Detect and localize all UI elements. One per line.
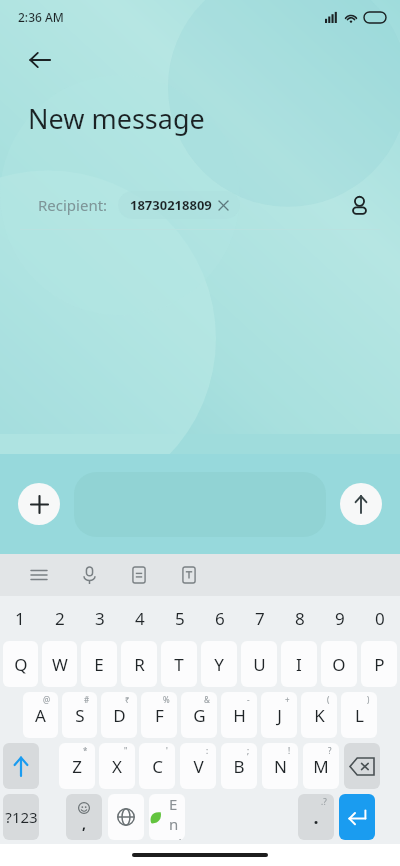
button[interactable]: T — [161, 641, 197, 687]
button[interactable]: 2 — [40, 598, 80, 638]
button[interactable]: X — [99, 743, 135, 789]
staticText: P — [374, 653, 385, 676]
staticText: " — [124, 745, 128, 756]
button[interactable]: E — [81, 641, 117, 687]
staticText: English — [169, 794, 185, 840]
staticText: # — [84, 694, 90, 705]
button[interactable] — [108, 794, 144, 840]
button[interactable]: S — [62, 692, 97, 738]
staticText: F — [155, 704, 164, 727]
staticText: A — [35, 704, 46, 727]
staticText: ( — [327, 694, 330, 705]
staticText: % — [163, 694, 170, 705]
staticText: V — [193, 755, 204, 778]
staticText: 4 — [135, 607, 145, 630]
button[interactable]: 3 — [80, 598, 120, 638]
staticText: ? — [328, 745, 332, 756]
staticText: N — [274, 755, 287, 778]
button[interactable]: H — [221, 692, 257, 738]
button[interactable]: B — [221, 743, 257, 789]
staticText: R — [134, 653, 145, 676]
button[interactable] — [339, 794, 375, 840]
staticText: S — [75, 704, 85, 727]
button[interactable]: A — [23, 692, 58, 738]
button[interactable]: 18730218809 — [118, 191, 240, 219]
staticText: . — [313, 805, 319, 830]
button[interactable]: N — [262, 743, 298, 789]
button[interactable]: 6 — [200, 598, 240, 638]
button[interactable]: L — [341, 692, 377, 738]
staticText: & — [204, 694, 210, 705]
button[interactable]: ?123 — [3, 794, 39, 840]
button[interactable]: 8 — [280, 598, 320, 638]
button[interactable]: V — [180, 743, 216, 789]
staticText: L — [355, 704, 364, 727]
button[interactable]: 9 — [320, 598, 360, 638]
button[interactable]: Voice input — [70, 556, 108, 594]
button[interactable]: J — [261, 692, 297, 738]
staticText: M — [313, 755, 329, 778]
button[interactable]: C — [139, 743, 175, 789]
button[interactable]: O — [321, 641, 357, 687]
staticText: : — [206, 745, 209, 756]
button[interactable]: K — [301, 692, 337, 738]
button[interactable]: Clipboard — [120, 556, 158, 594]
staticText: 5 — [175, 607, 185, 630]
button[interactable]: 7 — [240, 598, 280, 638]
button[interactable]: English — [149, 794, 185, 840]
staticText: J — [277, 704, 282, 727]
staticText: ! — [288, 745, 291, 756]
staticText: I — [296, 653, 302, 676]
staticText: C — [152, 755, 163, 778]
staticText: 6 — [215, 607, 225, 630]
button[interactable]: Send — [340, 483, 382, 525]
button[interactable]: D — [101, 692, 137, 738]
staticText: @ — [43, 694, 51, 705]
button[interactable]: I — [281, 641, 317, 687]
button[interactable]: Q — [3, 641, 38, 687]
staticText: X — [112, 755, 122, 778]
staticText: W — [52, 653, 68, 676]
staticText: T — [174, 653, 184, 676]
button[interactable]: 1 — [0, 598, 40, 638]
staticText: 2 — [55, 607, 65, 630]
button[interactable]: Contacts — [338, 184, 380, 226]
button[interactable]: 0 — [360, 598, 400, 638]
button[interactable]: F — [141, 692, 177, 738]
staticText: K — [314, 704, 325, 727]
button[interactable] — [344, 743, 380, 789]
button[interactable]: U — [241, 641, 277, 687]
staticText: Q — [14, 653, 28, 676]
button[interactable]: W — [42, 641, 77, 687]
staticText: ₹ — [125, 694, 130, 705]
button[interactable]: 4 — [120, 598, 160, 638]
button[interactable]: Back — [14, 34, 66, 86]
button[interactable]: , — [66, 794, 102, 840]
button[interactable]: 5 — [160, 598, 200, 638]
staticText: 9 — [335, 607, 345, 630]
staticText: H — [233, 704, 246, 727]
button[interactable]: M — [303, 743, 339, 789]
button[interactable]: Add attachment — [18, 483, 60, 525]
button[interactable]: R — [121, 641, 157, 687]
staticText: Z — [72, 755, 82, 778]
staticText: B — [233, 755, 245, 778]
button[interactable]: G — [181, 692, 217, 738]
staticText: Recipient: — [38, 195, 108, 215]
button[interactable]: . — [298, 794, 334, 840]
staticText: ) — [367, 694, 370, 705]
button[interactable]: Menu — [20, 556, 58, 594]
staticText: 18730218809 — [130, 196, 212, 214]
button[interactable]: P — [361, 641, 397, 687]
staticText: E — [94, 653, 104, 676]
staticText: D — [113, 704, 126, 727]
button[interactable] — [3, 743, 39, 789]
button[interactable]: Z — [59, 743, 95, 789]
staticText: - — [247, 694, 250, 705]
staticText: Y — [214, 653, 224, 676]
button[interactable]: Text style — [170, 556, 208, 594]
staticText: .? — [321, 796, 327, 807]
staticText: , — [82, 814, 86, 833]
button[interactable]: Y — [201, 641, 237, 687]
